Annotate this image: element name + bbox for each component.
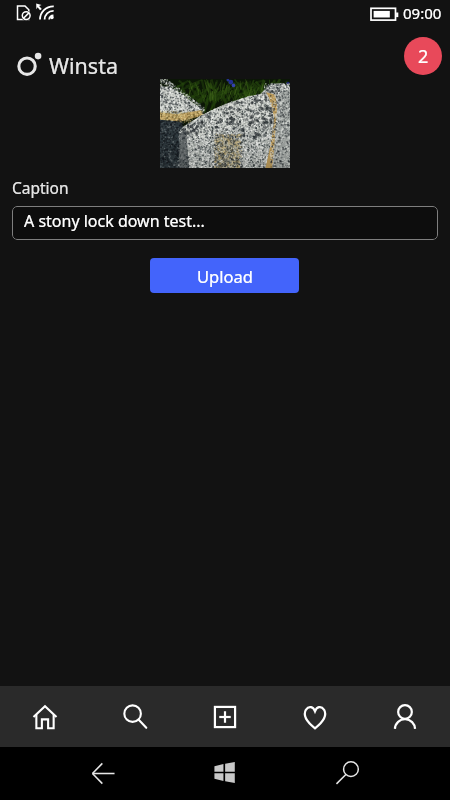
button[interactable]: Home [0, 686, 90, 747]
button[interactable]: Search [323, 749, 371, 797]
button[interactable]: Search [90, 686, 180, 747]
button[interactable]: Activity [270, 686, 360, 747]
staticText: Upload [197, 265, 253, 287]
button[interactable]: Selected photo [160, 79, 290, 168]
staticText: A stony lock down test... [24, 210, 205, 232]
button[interactable]: Start [200, 748, 248, 796]
button[interactable]: Back [79, 749, 127, 797]
button[interactable]: Notifications [404, 37, 442, 75]
staticText: Winsta [49, 51, 118, 80]
staticText: 2 [418, 44, 429, 69]
staticText: Caption [12, 177, 69, 198]
button[interactable]: Winsta [16, 47, 118, 83]
button[interactable]: New post [180, 686, 270, 747]
staticText: 09:00 [403, 3, 442, 23]
button[interactable]: A stony lock down test... [12, 206, 438, 240]
button[interactable]: Profile [360, 686, 450, 747]
button[interactable]: Upload [150, 258, 299, 293]
